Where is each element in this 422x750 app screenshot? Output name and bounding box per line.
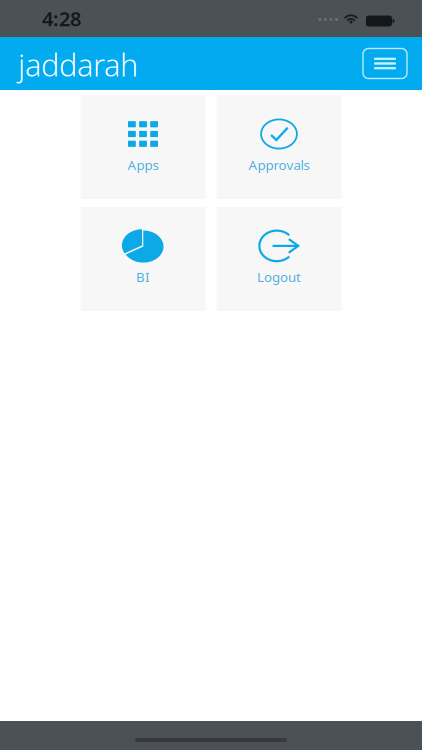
button[interactable]: Logout <box>216 207 341 311</box>
button[interactable]: Apps <box>80 95 205 199</box>
staticText: Logout <box>257 268 301 286</box>
staticText: Approvals <box>248 156 309 174</box>
staticText: 4:28 <box>42 5 81 32</box>
button[interactable]: Approvals <box>216 95 341 199</box>
staticText: Apps <box>127 156 158 174</box>
staticText: jaddarah <box>18 44 138 85</box>
button[interactable]: Menu <box>363 48 407 78</box>
staticText: BI <box>136 268 150 286</box>
button[interactable]: BI <box>80 207 205 311</box>
